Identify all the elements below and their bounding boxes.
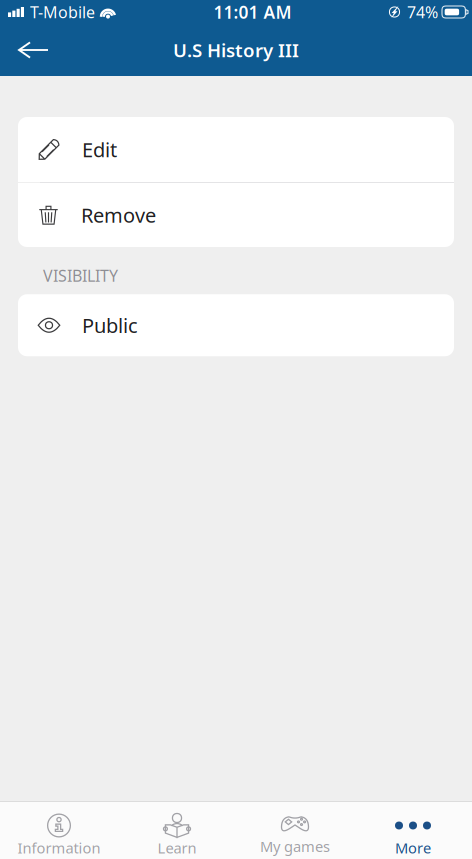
staticText: VISIBILITY	[43, 265, 118, 286]
button[interactable]: Learn	[118, 802, 236, 859]
button[interactable]: Information	[0, 802, 118, 859]
button[interactable]: My games	[236, 802, 354, 859]
button[interactable]: More	[354, 802, 472, 859]
staticText: 11:01 AM	[213, 0, 291, 23]
button[interactable]: Back	[0, 26, 60, 73]
staticText: 74%	[407, 1, 438, 23]
staticText: Remove	[81, 202, 156, 228]
button[interactable]: Edit	[18, 117, 454, 182]
staticText: U.S History III	[173, 38, 299, 62]
button[interactable]: Public	[18, 294, 454, 356]
staticText: More	[395, 838, 431, 857]
staticText: Information	[17, 838, 100, 857]
staticText: Learn	[157, 838, 196, 857]
staticText: My games	[260, 836, 330, 856]
staticText: Edit	[82, 136, 117, 163]
staticText: T-Mobile	[30, 1, 95, 23]
staticText: Public	[82, 312, 138, 339]
button[interactable]: Remove	[18, 183, 454, 247]
